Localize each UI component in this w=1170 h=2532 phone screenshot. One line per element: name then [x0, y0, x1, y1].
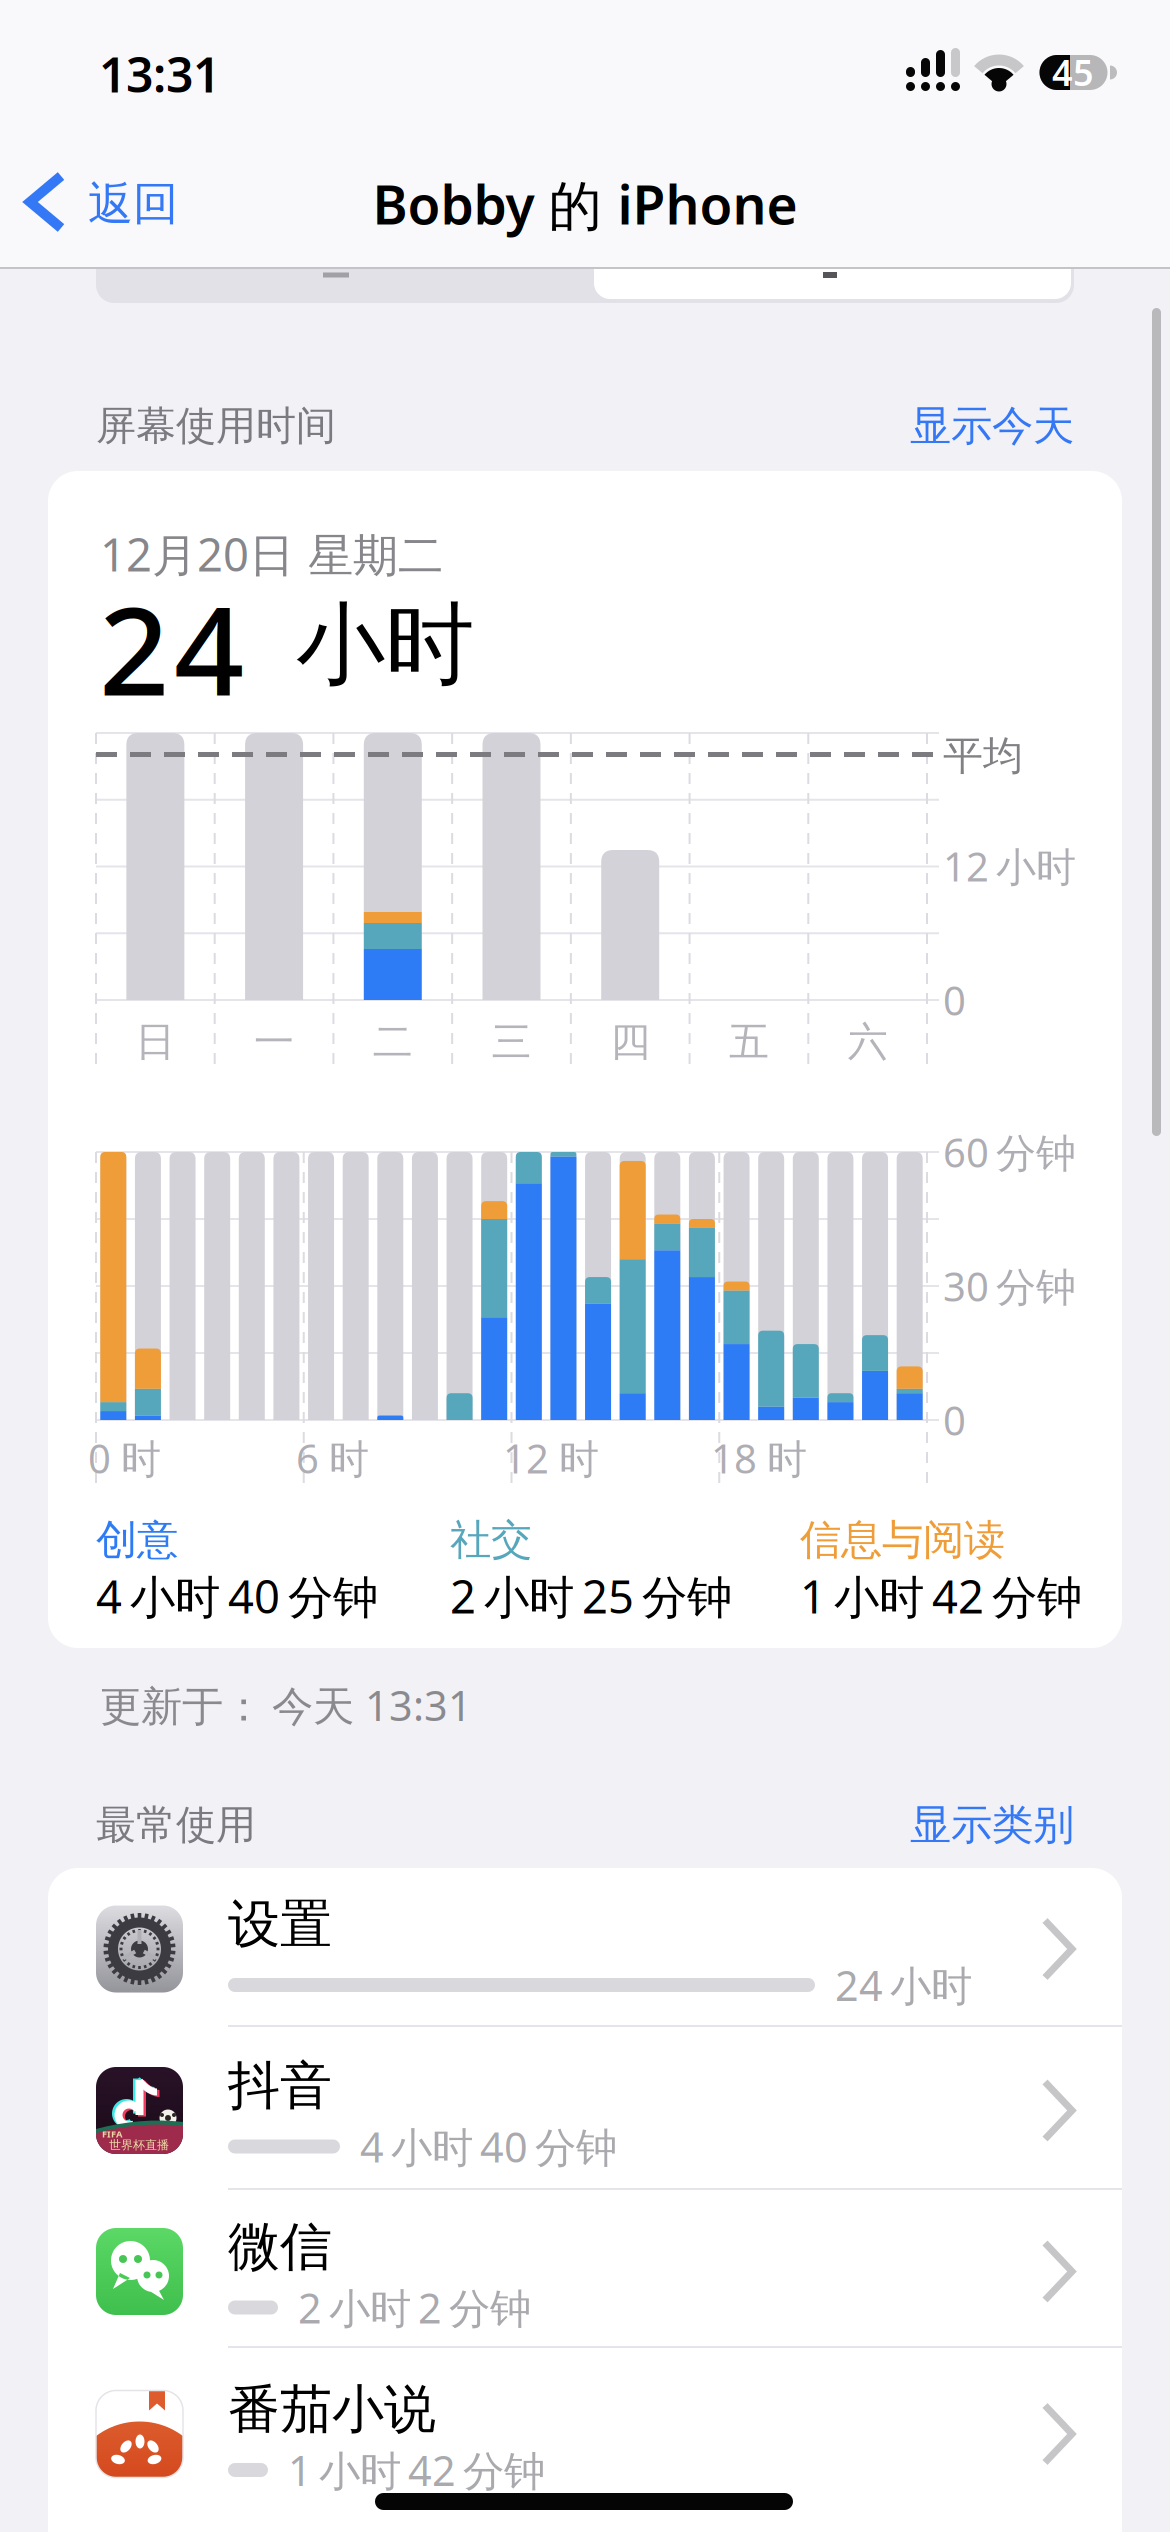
staticText: 显示今天 [910, 401, 1074, 451]
staticText: 社交 [450, 1515, 532, 1565]
staticText: 创意 [96, 1515, 178, 1565]
staticText: 微信 [228, 2215, 332, 2279]
staticText: 6 时 [296, 1431, 369, 1484]
staticText: 世界杯直播 [109, 2138, 169, 2152]
button[interactable]: 返回 [0, 152, 260, 256]
staticText: 日 [135, 1017, 175, 1066]
staticText: 返回 [88, 176, 178, 232]
staticText: 4 小时 40 分钟 [360, 2119, 617, 2174]
staticText: 更新于： 今天 13:31 [100, 1678, 472, 1732]
staticText: 显示类别 [910, 1800, 1074, 1850]
staticText: 2 小时 2 分钟 [298, 2280, 531, 2335]
staticText: 18 时 [711, 1431, 807, 1484]
staticText: 设置 [228, 1893, 332, 1956]
staticText: 0 [943, 1393, 966, 1446]
staticText: 30 分钟 [943, 1259, 1076, 1312]
staticText: 12 时 [503, 1431, 599, 1484]
staticText: 三 [491, 1017, 531, 1066]
button[interactable]: 微信 [48, 2191, 1122, 2352]
button[interactable]: 显示类别 [824, 1793, 1074, 1857]
staticText: 番茄小说 [228, 2378, 436, 2441]
button[interactable]: FIFA [48, 2030, 1122, 2191]
staticText: 0 时 [88, 1431, 161, 1484]
staticText: 60 分钟 [943, 1125, 1076, 1178]
staticText: 0 [943, 973, 966, 1026]
staticText: 最常使用 [96, 1800, 256, 1849]
staticText: 2 小时 25 分钟 [450, 1566, 732, 1626]
staticText: 六 [848, 1017, 888, 1066]
staticText: 24 [99, 567, 244, 729]
staticText: Bobby 的 iPhone [372, 168, 797, 240]
staticText: 小时 [296, 590, 474, 700]
staticText: 二 [373, 1017, 413, 1066]
staticText: FIFA [102, 2128, 122, 2140]
staticText: 24 小时 [835, 1958, 972, 2012]
staticText: 信息与阅读 [800, 1515, 1005, 1565]
staticText: 12 小时 [943, 839, 1076, 892]
staticText: 四 [610, 1017, 650, 1066]
staticText: 45 [1052, 48, 1094, 96]
staticText: 平均 [943, 731, 1023, 780]
staticText: 屏幕使用时间 [96, 401, 336, 450]
button[interactable]: 显示时间范围 [0, 230, 1170, 310]
button[interactable]: 显示今天 [824, 394, 1074, 458]
button[interactable]: 番茄小说 [48, 2353, 1122, 2514]
staticText: 一 [254, 1017, 294, 1066]
staticText: 13:31 [99, 42, 220, 106]
staticText: 4 小时 40 分钟 [96, 1566, 378, 1626]
staticText: 抖音 [228, 2054, 332, 2118]
button[interactable]: 设置 [48, 1868, 1122, 2029]
staticText: 1 小时 42 分钟 [800, 1566, 1082, 1626]
staticText: 1 小时 42 分钟 [288, 2443, 545, 2497]
staticText: 12月20日 星期二 [100, 524, 443, 584]
staticText: 五 [729, 1017, 769, 1066]
